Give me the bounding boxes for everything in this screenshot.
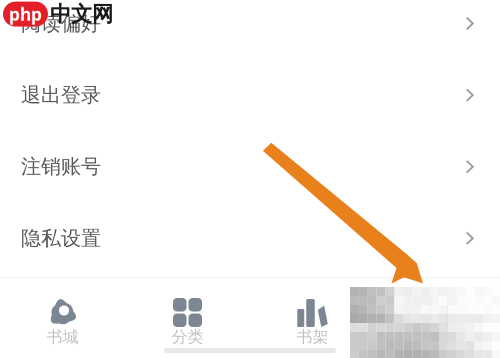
button[interactable]: 分类	[125, 278, 250, 358]
button[interactable]: 阅读偏好	[0, 0, 500, 59]
staticText: php	[9, 3, 42, 26]
staticText: 分类	[171, 327, 203, 347]
staticText: 我的	[421, 327, 453, 347]
button[interactable]: 我的	[375, 278, 500, 358]
button[interactable]: 退出登录	[0, 59, 500, 131]
staticText: 阅读偏好	[21, 11, 101, 36]
staticText: 注销账号	[21, 154, 101, 179]
staticText: 书城	[46, 327, 78, 347]
staticText: 隐私设置	[21, 226, 101, 251]
button[interactable]: 书城	[0, 278, 125, 358]
staticText: 中文网	[50, 1, 113, 27]
button[interactable]: 书架	[250, 278, 375, 358]
button[interactable]: 隐私设置	[0, 202, 500, 274]
staticText: 退出登录	[21, 83, 101, 107]
staticText: 书架	[296, 327, 328, 347]
button[interactable]: 注销账号	[0, 131, 500, 202]
